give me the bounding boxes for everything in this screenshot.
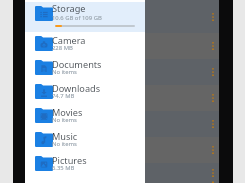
staticText: No items — [52, 68, 77, 76]
button[interactable]: More options — [145, 85, 219, 111]
button[interactable]: More options — [145, 163, 219, 183]
button[interactable]: More options — [145, 137, 219, 163]
staticText: No items — [52, 116, 77, 124]
other: More options — [211, 68, 215, 76]
button[interactable]: More options — [145, 111, 219, 137]
staticText: No items — [52, 140, 77, 148]
button[interactable]: Storage — [25, 2, 145, 32]
staticText: Downloads — [52, 82, 101, 95]
button[interactable]: Pictures — [25, 152, 145, 176]
staticText: Storage — [52, 2, 86, 15]
staticText: Documents — [52, 58, 102, 71]
other: More options — [211, 120, 215, 128]
button[interactable]: More options — [145, 59, 219, 85]
staticText: Movies — [52, 106, 83, 119]
staticText: 228 MB — [52, 44, 73, 52]
staticText: 10.6 GB of 109 GB — [52, 14, 102, 22]
staticText: Music — [52, 130, 78, 143]
button[interactable]: Music — [25, 128, 145, 152]
other: More options — [211, 94, 215, 102]
button[interactable]: More options — [145, 33, 219, 59]
staticText: Pictures — [52, 154, 87, 167]
other: More options — [211, 42, 215, 50]
other: More options — [211, 13, 215, 21]
staticText: 74.7 MB — [52, 92, 75, 100]
other: More options — [211, 146, 215, 154]
button[interactable]: Downloads — [25, 80, 145, 104]
staticText: 6.35 MB — [52, 164, 75, 172]
button[interactable]: Movies — [25, 104, 145, 128]
button[interactable]: Camera — [25, 32, 145, 56]
button[interactable]: Documents — [25, 56, 145, 80]
button[interactable]: More options — [145, 0, 219, 33]
staticText: Camera — [52, 34, 86, 47]
other: More options — [211, 169, 215, 177]
